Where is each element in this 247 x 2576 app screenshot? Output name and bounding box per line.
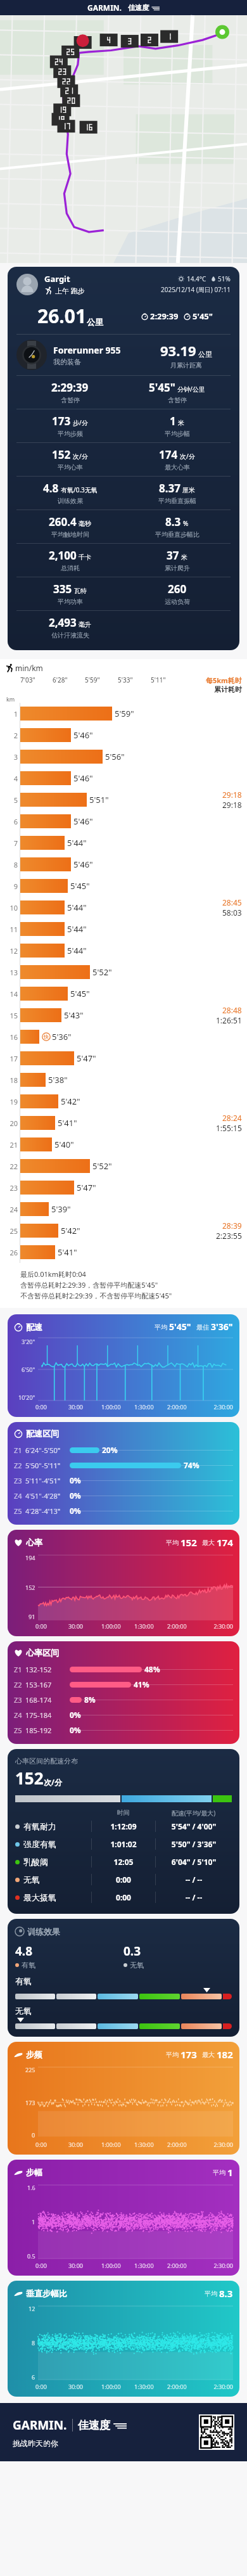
staticText: Z4 bbox=[14, 1491, 22, 1501]
staticText: 5'43" bbox=[64, 1009, 84, 1021]
button[interactable]: 配速区间 bbox=[8, 1422, 239, 1525]
staticText: 3'36" bbox=[211, 1321, 233, 1333]
staticText: 6 bbox=[32, 2373, 35, 2381]
button[interactable]: Gargit bbox=[8, 267, 239, 650]
staticText: 公里 bbox=[87, 317, 103, 327]
staticText: 14.4°C bbox=[187, 274, 206, 283]
staticText: 平均触地时间 bbox=[51, 530, 89, 539]
staticText: 月累计距离 bbox=[170, 361, 202, 369]
staticText: 2:30:00 bbox=[200, 2141, 233, 2148]
staticText: 5'46" bbox=[73, 859, 93, 870]
staticText: 平均 bbox=[166, 2050, 180, 2059]
staticText: 配速区间 bbox=[26, 1428, 59, 1439]
staticText: 每5km耗时 bbox=[206, 676, 242, 685]
staticText: GARMIN. bbox=[13, 2417, 67, 2433]
staticText: 2:29:39 bbox=[51, 380, 89, 395]
staticText: 1 bbox=[227, 2166, 233, 2179]
staticText: 平均功率 bbox=[58, 598, 83, 606]
button[interactable]: 心率区间 bbox=[8, 1641, 239, 1744]
button[interactable]: 心率 bbox=[8, 1530, 239, 1636]
button[interactable]: 步幅 bbox=[8, 2160, 239, 2276]
staticText: 5'44" bbox=[67, 923, 87, 935]
staticText: -- / -- bbox=[156, 1874, 232, 1885]
staticText: 19 bbox=[5, 1097, 18, 1106]
staticText: 8 bbox=[5, 860, 18, 869]
staticText: 4.8 bbox=[15, 1943, 33, 1959]
staticText: 5'52" bbox=[92, 966, 112, 978]
staticText: 91 bbox=[28, 1613, 35, 1620]
staticText: 2 bbox=[5, 731, 18, 740]
button[interactable]: 配速 bbox=[8, 1314, 239, 1417]
staticText: 2:30:00 bbox=[200, 1622, 233, 1630]
staticText: 米 bbox=[181, 553, 187, 561]
staticText: 152 bbox=[15, 1767, 44, 1789]
staticText: 335 bbox=[53, 582, 72, 596]
staticText: 2:00:00 bbox=[167, 2262, 200, 2269]
staticText: 6'24"-5'50" bbox=[25, 1445, 61, 1455]
staticText: 含暂停 bbox=[168, 396, 187, 404]
staticText: 1:30:00 bbox=[134, 1622, 167, 1630]
staticText: 4.8 bbox=[43, 481, 59, 496]
staticText: 18 bbox=[5, 1075, 18, 1085]
staticText: 5'38" bbox=[48, 1074, 68, 1086]
staticText: 5'33" bbox=[118, 676, 133, 684]
staticText: 74% bbox=[184, 1460, 199, 1470]
staticText: Z1 bbox=[14, 1445, 22, 1455]
staticText: 5'45" bbox=[70, 988, 90, 999]
staticText: 51% bbox=[218, 274, 231, 283]
button[interactable]: 训练效果 bbox=[8, 1919, 239, 2037]
staticText: 30:00 bbox=[68, 1403, 101, 1411]
staticText: 5'45" bbox=[193, 311, 213, 322]
staticText: 22 bbox=[5, 1162, 18, 1171]
staticText: 挑战昨天的你 bbox=[13, 2438, 58, 2448]
staticText: 2:00:00 bbox=[167, 2141, 200, 2148]
staticText: 12 bbox=[28, 2305, 35, 2312]
staticText: 5'11" bbox=[151, 676, 166, 684]
staticText: Z4 bbox=[14, 1710, 22, 1720]
staticText: 3 bbox=[5, 752, 18, 762]
staticText: % bbox=[183, 519, 189, 528]
button[interactable]: 步频 bbox=[8, 2042, 239, 2155]
staticText: 0:00 bbox=[35, 1622, 68, 1630]
staticText: 时间 bbox=[91, 1809, 155, 1817]
staticText: Forerunner 955 bbox=[53, 344, 121, 356]
staticText: 173 bbox=[180, 2048, 197, 2061]
staticText: 累计爬升 bbox=[165, 564, 190, 572]
staticText: 垂直步幅比 bbox=[26, 2288, 67, 2298]
staticText: 152 bbox=[52, 447, 71, 462]
staticText: 17 bbox=[5, 1054, 18, 1063]
button[interactable]: 心率区间的配速分布 bbox=[8, 1749, 239, 1914]
staticText: 28:39 bbox=[222, 1221, 242, 1231]
staticText: 0.5 bbox=[27, 2252, 35, 2260]
staticText: 有氧 bbox=[15, 1976, 32, 1986]
staticText: 公里 bbox=[198, 350, 212, 359]
staticText: 毫升 bbox=[79, 620, 91, 629]
staticText: Z2 bbox=[14, 1461, 22, 1470]
staticText: 30:00 bbox=[68, 2383, 101, 2390]
staticText: 上午 跑步 bbox=[55, 286, 85, 295]
button[interactable]: 垂直步幅比 bbox=[8, 2281, 239, 2397]
staticText: 分钟/公里 bbox=[177, 385, 205, 394]
staticText: 无氧 bbox=[15, 2006, 32, 2016]
staticText: 1:00:00 bbox=[101, 2383, 134, 2390]
staticText: 168-174 bbox=[25, 1695, 52, 1705]
staticText: 训练效果 bbox=[27, 1926, 60, 1937]
staticText: 11 bbox=[5, 925, 18, 934]
staticText: 配速(平均/最大) bbox=[155, 1809, 232, 1817]
staticText: 28:24 bbox=[222, 1113, 242, 1123]
staticText: 6 bbox=[5, 817, 18, 826]
staticText: 28:45 bbox=[222, 897, 242, 907]
staticText: 29:18 bbox=[222, 800, 242, 810]
staticText: 含暂停总耗时2:29:39，含暂停平均配速5'45" bbox=[20, 1280, 158, 1290]
staticText: 24 bbox=[5, 1205, 18, 1214]
staticText: Z1 bbox=[14, 1665, 22, 1674]
staticText: 最佳 bbox=[196, 1323, 211, 1331]
staticText: 5'56" bbox=[105, 751, 125, 762]
staticText: 5'45" bbox=[70, 880, 90, 892]
staticText: 平均 bbox=[155, 1323, 169, 1331]
staticText: 194 bbox=[25, 1554, 35, 1561]
staticText: 最大 bbox=[202, 2050, 217, 2059]
staticText: 93.19 bbox=[160, 341, 196, 360]
staticText: 174 bbox=[159, 447, 178, 462]
staticText: 30:00 bbox=[68, 2141, 101, 2148]
